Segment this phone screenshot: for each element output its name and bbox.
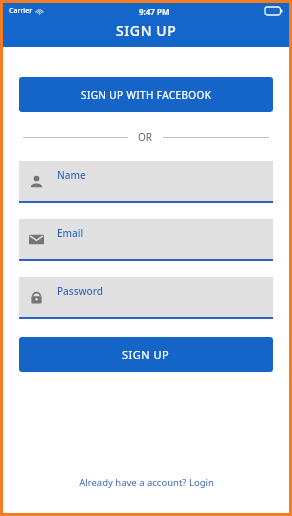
button[interactable]: Name xyxy=(19,161,273,203)
staticText: SIGN UP xyxy=(122,347,170,362)
staticText: OR xyxy=(138,130,153,144)
staticText: Already have a account? Login xyxy=(79,476,214,489)
staticText: Name xyxy=(57,168,86,182)
button[interactable]: Email xyxy=(19,219,273,261)
staticText: SIGN UP WITH FACEBOOK xyxy=(81,88,212,102)
button[interactable]: SIGN UP WITH FACEBOOK xyxy=(19,77,273,112)
staticText: SIGN UP xyxy=(116,21,177,40)
staticText: Email xyxy=(57,226,84,240)
staticText: 9:47 PM xyxy=(139,6,170,17)
button[interactable]: SIGN UP xyxy=(19,337,273,372)
staticText: Carrier xyxy=(9,6,33,16)
button[interactable]: Password xyxy=(19,277,273,319)
staticText: Password xyxy=(57,284,103,298)
button[interactable]: Already have a account? Login xyxy=(19,466,273,499)
